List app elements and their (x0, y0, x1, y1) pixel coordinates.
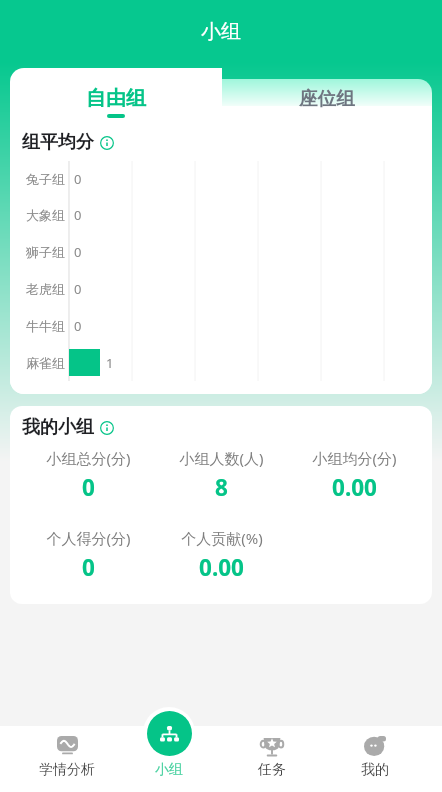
staticText: 1 (106, 354, 114, 372)
staticText: 0.00 (199, 552, 244, 583)
staticText: 我的小组 (22, 416, 94, 439)
staticText: 学情分析 (39, 761, 95, 779)
staticText: 小组均分(分) (312, 448, 397, 468)
staticText: 0 (74, 280, 82, 298)
staticText: 个人贡献(%) (181, 528, 263, 548)
staticText: 0 (74, 243, 82, 261)
staticText: 狮子组 (26, 244, 65, 260)
staticText: 个人得分(分) (46, 528, 131, 548)
staticText: 8 (215, 472, 228, 503)
staticText: 0 (82, 472, 95, 503)
staticText: 兔子组 (26, 171, 65, 187)
button[interactable]: 自由组 (10, 68, 221, 120)
staticText: 牛牛组 (26, 318, 65, 334)
button[interactable]: 座位组 (221, 68, 432, 120)
staticText: 小组人数(人) (179, 448, 264, 468)
staticText: 小组 (201, 19, 241, 44)
staticText: 0 (74, 170, 82, 188)
other: 小组 (143, 707, 195, 759)
staticText: 小组 (155, 761, 183, 779)
staticText: 小组总分(分) (46, 448, 131, 468)
button[interactable]: 任务 (220, 726, 323, 792)
staticText: 0.00 (332, 472, 377, 503)
staticText: 麻雀组 (26, 355, 65, 371)
staticText: 老虎组 (26, 281, 65, 297)
staticText: 0 (74, 206, 82, 224)
button[interactable]: 学情分析 (16, 726, 118, 792)
staticText: 大象组 (26, 207, 65, 223)
staticText: 自由组 (86, 86, 146, 111)
button[interactable]: 我的 (323, 726, 426, 792)
staticText: 任务 (258, 761, 286, 779)
staticText: 我的 (361, 761, 389, 779)
staticText: 0 (74, 317, 82, 335)
staticText: 组平均分 (22, 131, 94, 154)
staticText: 0 (82, 552, 95, 583)
staticText: 座位组 (299, 87, 355, 110)
button[interactable]: 小组 (118, 726, 220, 792)
